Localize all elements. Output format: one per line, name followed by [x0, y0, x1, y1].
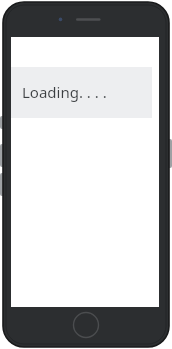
staticText: Loading. . . .	[22, 82, 107, 102]
button[interactable]: Home	[73, 312, 99, 338]
button[interactable]: Loading. . . .	[11, 67, 152, 118]
